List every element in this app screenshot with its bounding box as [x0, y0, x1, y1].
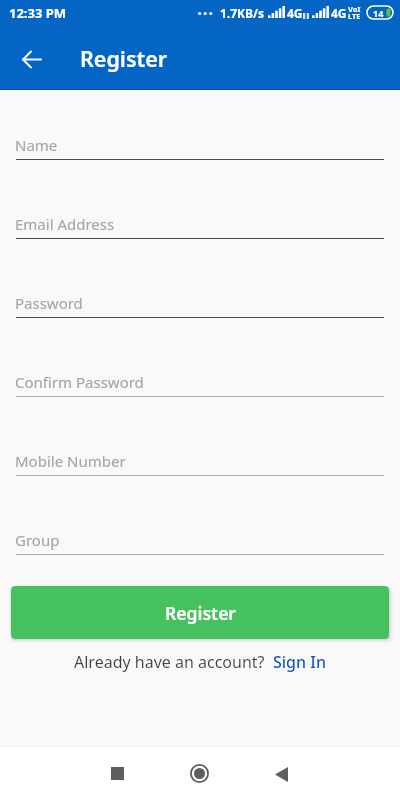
staticText: Sign In	[273, 651, 326, 673]
staticText: 14	[373, 7, 384, 19]
button[interactable]: Name	[16, 128, 384, 160]
button[interactable]: Confirm Password	[16, 365, 384, 397]
button[interactable]: Group	[16, 523, 384, 555]
button[interactable]: Back	[261, 754, 301, 794]
staticText: 12:33 PM	[9, 4, 67, 22]
staticText: Register	[80, 44, 168, 73]
button[interactable]: Email Address	[16, 207, 384, 239]
staticText: Email Address	[15, 214, 115, 234]
staticText: Password	[15, 293, 83, 313]
staticText: Register	[165, 601, 236, 625]
button[interactable]: Recent apps	[97, 753, 137, 793]
staticText: Name	[15, 135, 58, 155]
button[interactable]: Back	[10, 37, 54, 81]
staticText: LTE	[348, 11, 361, 21]
button[interactable]: Sign In	[273, 651, 326, 673]
staticText: VoI	[348, 4, 361, 14]
staticText: Group	[15, 530, 60, 550]
button[interactable]: Mobile Number	[16, 444, 384, 476]
button[interactable]: Home	[179, 753, 219, 793]
staticText: 1.7KB/s	[220, 5, 265, 21]
button[interactable]: Register	[11, 586, 389, 639]
staticText: Mobile Number	[15, 451, 126, 471]
staticText: Confirm Password	[15, 372, 144, 392]
button[interactable]: Password	[16, 286, 384, 318]
staticText: 4G	[331, 5, 347, 21]
staticText: 4G	[287, 5, 303, 21]
staticText: Already have an account?	[74, 651, 265, 673]
